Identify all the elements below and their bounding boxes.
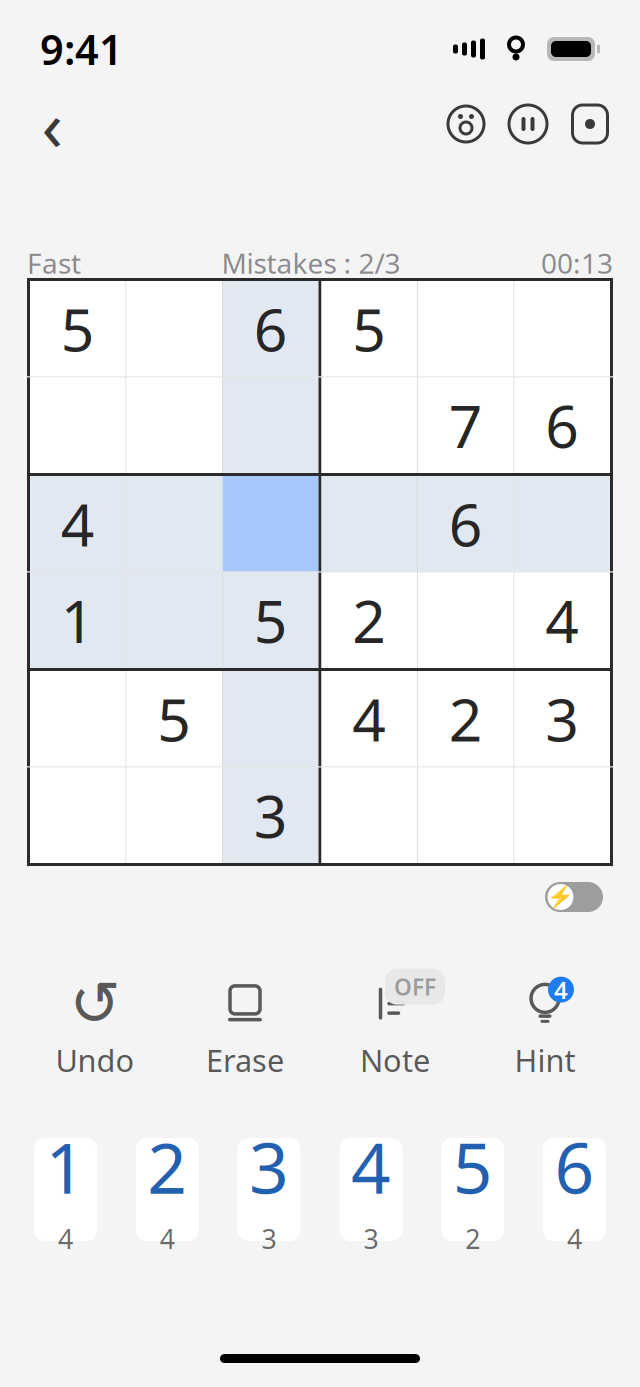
button[interactable]: 5 — [321, 281, 417, 376]
staticText: 9:41 — [40, 22, 123, 76]
staticText: 3 — [254, 776, 288, 854]
staticText: 5 — [61, 290, 95, 368]
button[interactable]: 3 — [514, 671, 610, 766]
staticText: 3 — [363, 1221, 378, 1256]
button[interactable]: 4 — [321, 671, 417, 766]
button[interactable]: 3 — [223, 767, 318, 863]
staticText: Hint — [514, 1040, 575, 1080]
button[interactable]: Empty cell — [223, 476, 318, 571]
button[interactable]: Number 4 — [339, 1138, 402, 1241]
button[interactable]: ↺ — [20, 980, 170, 1078]
staticText: 4 — [351, 1121, 391, 1213]
staticText: 4 — [545, 581, 579, 659]
button[interactable]: Number 3 — [238, 1138, 301, 1241]
staticText: 2 — [352, 581, 386, 659]
staticText: 6 — [554, 1121, 594, 1213]
button[interactable]: 4 — [30, 476, 125, 571]
button[interactable]: Pause — [500, 96, 556, 152]
staticText: 1 — [45, 1121, 85, 1213]
button[interactable]: Number 6 — [543, 1138, 606, 1241]
staticText: 5 — [254, 581, 288, 659]
button[interactable]: 7 — [418, 377, 513, 473]
staticText: 4 — [61, 485, 95, 563]
button[interactable]: Theme — [438, 96, 494, 152]
staticText: 1 — [61, 581, 95, 659]
staticText: Undo — [55, 1040, 134, 1080]
staticText: 4 — [554, 974, 568, 1006]
staticText: 4 — [160, 1221, 175, 1256]
button[interactable]: 2 — [321, 572, 417, 668]
staticText: ‹ — [41, 78, 62, 170]
staticText: 6 — [545, 386, 579, 464]
button[interactable]: 6 — [514, 377, 610, 473]
button[interactable]: Settings — [562, 96, 618, 152]
button[interactable]: 4 — [514, 572, 610, 668]
button[interactable]: Fast mode toggle — [535, 872, 613, 922]
staticText: 2 — [147, 1121, 187, 1213]
staticText: 5 — [157, 680, 191, 758]
button[interactable]: 4 — [470, 980, 620, 1078]
button[interactable]: Number 2 — [136, 1138, 199, 1241]
staticText: 4 — [567, 1221, 582, 1256]
staticText: ⚡ — [547, 885, 574, 909]
button[interactable]: 5 — [126, 671, 222, 766]
button[interactable]: 5 — [223, 572, 318, 668]
staticText: Fast — [27, 244, 81, 282]
staticText: ↺ — [69, 969, 120, 1038]
staticText: Note — [360, 1040, 430, 1080]
staticText: 6 — [449, 485, 483, 563]
staticText: 3 — [545, 680, 579, 758]
staticText: 7 — [449, 386, 483, 464]
staticText: 5 — [453, 1121, 493, 1213]
staticText: 2 — [465, 1221, 480, 1256]
staticText: 3 — [262, 1221, 277, 1256]
staticText: 00:13 — [541, 244, 613, 282]
button[interactable]: OFF — [320, 980, 470, 1078]
staticText: OFF — [394, 972, 436, 1002]
button[interactable]: Back — [22, 94, 82, 154]
staticText: 3 — [249, 1121, 289, 1213]
staticText: Erase — [206, 1040, 284, 1080]
button[interactable]: Number 5 — [441, 1138, 504, 1241]
staticText: 4 — [352, 680, 386, 758]
button[interactable]: 1 — [30, 572, 125, 668]
staticText: 4 — [58, 1221, 73, 1256]
staticText: 2 — [449, 680, 483, 758]
button[interactable]: Erase — [170, 980, 320, 1078]
button[interactable]: 2 — [418, 671, 513, 766]
staticText: 6 — [254, 290, 288, 368]
button[interactable]: Number 1 — [34, 1138, 97, 1241]
staticText: 5 — [352, 290, 386, 368]
staticText: Mistakes : 2/3 — [221, 244, 400, 282]
button[interactable]: 6 — [418, 476, 513, 571]
button[interactable]: 6 — [223, 281, 318, 376]
button[interactable]: 5 — [30, 281, 125, 376]
